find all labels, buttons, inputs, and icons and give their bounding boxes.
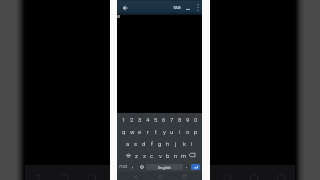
button[interactable]: Back — [117, 0, 132, 15]
staticText: 7 — [195, 169, 206, 180]
staticText: ?123 — [119, 164, 128, 169]
staticText: 6 — [168, 169, 179, 180]
button[interactable]: 9 — [184, 113, 192, 125]
button[interactable]: English — [146, 164, 183, 170]
staticText: w — [130, 128, 135, 135]
button[interactable]: m — [180, 149, 188, 161]
button[interactable]: j — [172, 137, 180, 149]
staticText: j — [175, 140, 177, 147]
button[interactable]: w — [128, 125, 136, 137]
button[interactable]: n — [172, 149, 180, 161]
staticText: l — [191, 140, 193, 147]
staticText: e — [138, 128, 142, 135]
button[interactable]: Minimize — [182, 0, 193, 15]
button[interactable]: y — [160, 125, 168, 137]
button[interactable]: 6 — [160, 113, 168, 125]
staticText: d — [142, 140, 146, 147]
button[interactable]: x — [140, 149, 148, 161]
staticText: 3 — [138, 116, 142, 123]
button[interactable]: e — [136, 125, 144, 137]
button[interactable]: c — [148, 149, 156, 161]
button[interactable]: Backspace — [188, 149, 196, 161]
staticText: x — [143, 152, 146, 159]
staticText: z — [135, 152, 138, 159]
staticText: i — [179, 128, 181, 135]
staticText: 7 — [170, 116, 174, 123]
button[interactable]: 7 — [168, 113, 176, 125]
button[interactable]: l — [188, 137, 196, 149]
button[interactable]: z — [132, 149, 140, 161]
button[interactable]: u — [168, 125, 176, 137]
button[interactable]: f — [148, 137, 156, 149]
button[interactable]: TAB — [171, 0, 182, 15]
staticText: 5 — [141, 169, 152, 180]
staticText: y — [163, 128, 166, 135]
button[interactable]: , — [129, 161, 137, 172]
staticText: c — [150, 152, 154, 159]
staticText: t — [155, 128, 157, 135]
staticText: 8 — [222, 169, 233, 180]
button[interactable]: q — [120, 125, 128, 137]
button[interactable]: 2 — [128, 113, 136, 125]
staticText: TAB — [173, 5, 181, 11]
staticText: f — [151, 140, 153, 147]
staticText: 5 — [154, 116, 158, 123]
staticText: k — [183, 140, 186, 147]
button[interactable]: 0 — [192, 113, 200, 125]
staticText: h — [166, 140, 170, 147]
staticText: 0 — [276, 169, 287, 180]
button[interactable]: t — [152, 125, 160, 137]
staticText: u — [170, 128, 174, 135]
button[interactable]: d — [140, 137, 148, 149]
staticText: g — [158, 140, 162, 147]
staticText: n — [174, 152, 178, 159]
button[interactable]: p — [192, 125, 200, 137]
staticText: v — [159, 152, 162, 159]
button[interactable]: 8 — [176, 113, 184, 125]
button[interactable]: g — [156, 137, 164, 149]
staticText: 9 — [186, 116, 190, 123]
staticText: m — [181, 152, 187, 159]
staticText: 1 — [122, 116, 126, 123]
staticText: b — [166, 152, 170, 159]
button[interactable]: k — [180, 137, 188, 149]
staticText: o — [186, 128, 190, 135]
button[interactable]: r — [144, 125, 152, 137]
staticText: s — [134, 140, 138, 147]
staticText: 0 — [194, 116, 198, 123]
button[interactable]: ?123 — [117, 161, 129, 172]
staticText: 2 — [130, 116, 134, 123]
button[interactable]: 1 — [120, 113, 128, 125]
staticText: 2 — [60, 169, 71, 180]
button[interactable]: Back — [129, 172, 141, 180]
button[interactable]: Enter — [191, 164, 200, 170]
button[interactable]: Home — [154, 172, 166, 180]
staticText: r — [147, 128, 150, 135]
button[interactable]: More options — [193, 0, 202, 15]
button[interactable]: v — [156, 149, 164, 161]
button[interactable]: 4 — [144, 113, 152, 125]
button[interactable]: Shift — [124, 149, 132, 161]
button[interactable]: 5 — [152, 113, 160, 125]
staticText: p — [194, 128, 198, 135]
button[interactable]: 3 — [136, 113, 144, 125]
staticText: q — [122, 128, 126, 135]
staticText: 3 — [87, 169, 98, 180]
staticText: 8 — [178, 116, 182, 123]
button[interactable]: Keyboard settings — [137, 161, 146, 172]
button[interactable]: Recent apps — [178, 172, 190, 180]
staticText: English — [158, 165, 171, 170]
button[interactable]: s — [132, 137, 140, 149]
staticText: 4 — [114, 169, 125, 180]
button[interactable]: h — [164, 137, 172, 149]
staticText: a — [126, 140, 130, 147]
button[interactable]: b — [164, 149, 172, 161]
staticText: 9 — [249, 169, 260, 180]
button[interactable]: a — [124, 137, 132, 149]
staticText: 6 — [162, 116, 166, 123]
button[interactable]: o — [184, 125, 192, 137]
button[interactable]: i — [176, 125, 184, 137]
staticText: 4 — [146, 116, 150, 123]
button[interactable]: . — [183, 161, 191, 172]
